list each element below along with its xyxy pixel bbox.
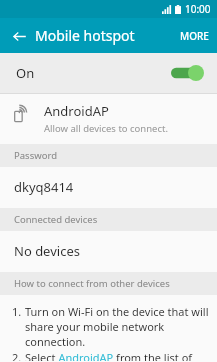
staticText: AndroidAP [44, 102, 109, 120]
button[interactable]: No devices [0, 231, 217, 272]
staticText: Mobile hotspot [35, 26, 135, 45]
staticText: How to connect from other devices [14, 277, 170, 290]
button[interactable]: On [0, 53, 217, 93]
staticText: Select AndroidAP from the list of availa… [25, 350, 209, 361]
staticText: 10:00 [185, 2, 211, 16]
staticText: dkyq8414 [14, 178, 74, 196]
staticText: No devices [14, 242, 80, 260]
button[interactable]: dkyq8414 [0, 167, 217, 208]
button[interactable]: Back [6, 23, 32, 49]
staticText: 1. [12, 304, 25, 319]
staticText: Allow all devices to connect. [44, 122, 168, 135]
staticText: 2. [12, 350, 25, 361]
button[interactable]: MORE [172, 23, 217, 49]
staticText: MORE [180, 29, 209, 43]
button[interactable]: AndroidAP [0, 94, 217, 144]
staticText: On [16, 64, 35, 82]
staticText: Turn on Wi-Fi on the device that will sh… [25, 304, 209, 349]
staticText: Password [14, 149, 57, 162]
staticText: Connected devices [14, 213, 98, 226]
